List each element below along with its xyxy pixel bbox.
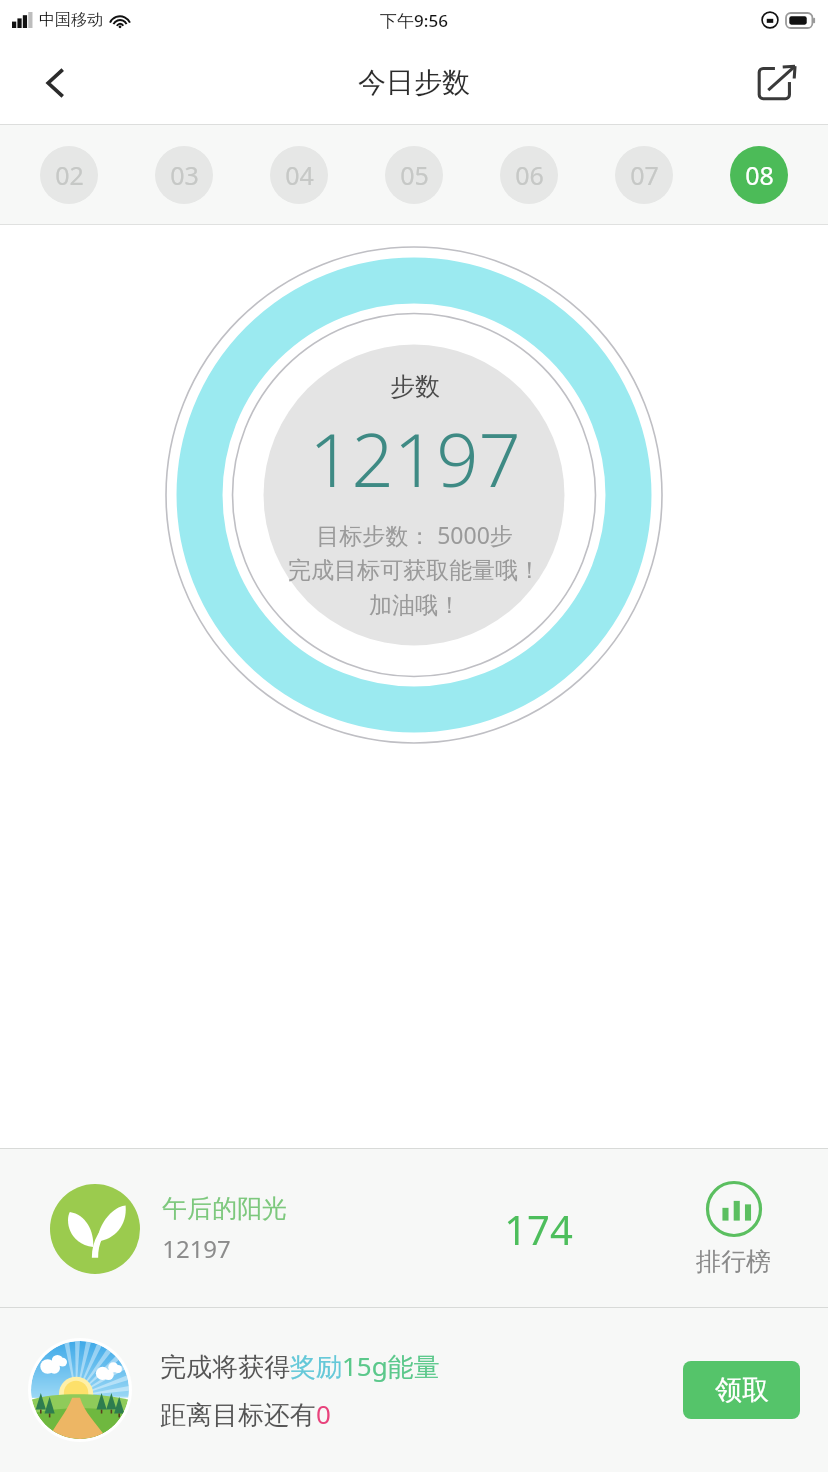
staticText: 03: [170, 158, 199, 192]
staticText: 午后的阳光: [162, 1193, 287, 1224]
button[interactable]: 02: [40, 146, 98, 204]
staticText: 06: [515, 158, 544, 192]
button[interactable]: 05: [385, 146, 443, 204]
staticText: 05: [400, 158, 429, 192]
staticText: 距离目标还有0: [160, 1396, 331, 1432]
staticText: 07: [630, 158, 659, 192]
button[interactable]: 03: [155, 146, 213, 204]
button[interactable]: Back: [28, 55, 84, 111]
staticText: 步数: [390, 371, 440, 402]
button[interactable]: 04: [270, 146, 328, 204]
staticText: 12197: [309, 408, 521, 509]
staticText: 加油哦！: [369, 591, 461, 620]
button[interactable]: 午后的阳光: [0, 1184, 438, 1274]
staticText: 12197: [162, 1232, 231, 1265]
button[interactable]: 06: [500, 146, 558, 204]
button[interactable]: Share: [748, 55, 804, 111]
staticText: 中国移动: [39, 10, 103, 30]
staticText: 174: [504, 1202, 573, 1256]
staticText: 08: [745, 158, 774, 192]
staticText: 目标步数： 5000步: [316, 519, 513, 550]
staticText: 下午9:56: [380, 9, 448, 32]
button[interactable]: 领取: [683, 1361, 800, 1419]
staticText: 排行榜: [696, 1246, 771, 1277]
staticText: 完成目标可获取能量哦！: [288, 556, 541, 585]
button[interactable]: 排行榜: [638, 1180, 828, 1277]
button[interactable]: 07: [615, 146, 673, 204]
staticText: 今日步数: [358, 65, 470, 100]
staticText: 02: [55, 158, 84, 192]
button[interactable]: 08: [730, 146, 788, 204]
staticText: 完成将获得奖励15g能量: [160, 1348, 440, 1384]
staticText: 04: [285, 158, 314, 192]
staticText: 领取: [715, 1373, 769, 1407]
